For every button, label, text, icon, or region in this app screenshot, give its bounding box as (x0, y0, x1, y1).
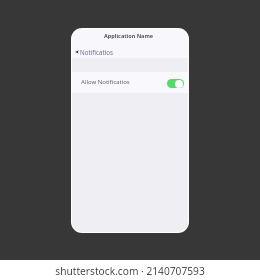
staticText: Notificatios (80, 48, 113, 56)
button[interactable]: Allow Notificatios (72, 72, 188, 93)
staticText: Application Name (104, 32, 154, 39)
button[interactable]: Allow Notifications switch, on (167, 79, 184, 88)
staticText: shutterstock.com · 2140707593 (0, 264, 260, 278)
button[interactable]: Back to Notifications (73, 47, 113, 57)
other: Back to Notifications (75, 50, 79, 54)
staticText: Allow Notificatios (81, 78, 130, 86)
